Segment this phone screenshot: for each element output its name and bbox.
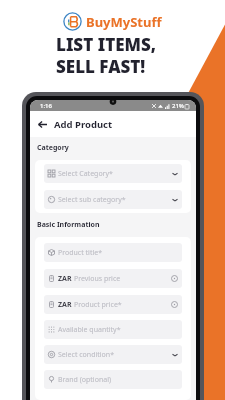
- staticText: 1:16: [40, 102, 52, 110]
- staticText: ZAR: [58, 274, 72, 284]
- staticText: Previous price: [74, 274, 121, 284]
- button[interactable]: Product title*: [44, 243, 182, 262]
- staticText: Product price*: [74, 300, 122, 310]
- staticText: Select sub category*: [58, 195, 126, 205]
- staticText: Product title*: [58, 248, 103, 258]
- button[interactable]: Select sub category*: [44, 190, 182, 209]
- staticText: Category: [37, 143, 69, 153]
- button[interactable]: ZAR: [44, 295, 182, 314]
- button[interactable]: Brand (optional): [44, 370, 182, 389]
- staticText: Basic Information: [37, 220, 100, 230]
- staticText: Select condition*: [58, 350, 115, 360]
- button[interactable]: Back: [35, 117, 49, 131]
- staticText: BuyMyStuff: [86, 13, 162, 31]
- staticText: Available quantity*: [58, 325, 121, 335]
- button[interactable]: Available quantity*: [44, 320, 182, 339]
- staticText: 21%: [172, 102, 184, 110]
- button[interactable]: ZAR: [44, 269, 182, 288]
- button[interactable]: Select Category*: [44, 164, 182, 183]
- button[interactable]: Select condition*: [44, 345, 182, 364]
- staticText: Brand (optional): [58, 375, 112, 385]
- staticText: Select Category*: [58, 169, 113, 179]
- staticText: Add Product: [54, 118, 113, 131]
- staticText: ZAR: [58, 300, 72, 310]
- staticText: LIST ITEMS, SELL FAST!: [56, 33, 157, 78]
